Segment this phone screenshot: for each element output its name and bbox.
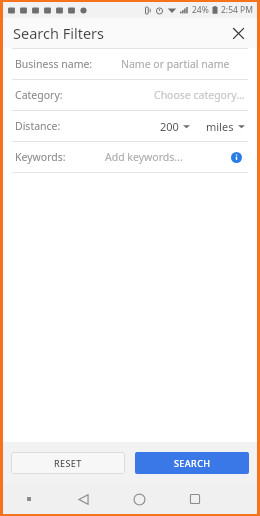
staticText: RESET	[54, 457, 82, 469]
button[interactable]: Keywords info	[227, 148, 245, 166]
button[interactable]: SEARCH	[135, 452, 249, 474]
button[interactable]: 200	[160, 119, 190, 134]
staticText: Category:	[15, 88, 63, 102]
staticText: Name or partial name	[121, 57, 230, 71]
staticText: Keywords:	[15, 150, 66, 164]
button[interactable]: Back	[55, 484, 111, 514]
staticText: 24%	[192, 4, 209, 16]
button[interactable]: Home	[111, 484, 167, 514]
staticText: Add keywords...	[105, 150, 183, 164]
button[interactable]: Add keywords...	[105, 150, 183, 164]
staticText: 2:54 PM	[221, 4, 253, 16]
button[interactable]: Business name:	[3, 49, 257, 79]
button[interactable]: Close	[225, 20, 251, 46]
staticText: 200	[160, 119, 179, 134]
button[interactable]: miles	[206, 119, 245, 134]
staticText: SEARCH	[174, 457, 211, 469]
staticText: Business name:	[15, 57, 93, 71]
button[interactable]: Recent apps	[167, 484, 223, 514]
button[interactable]: RESET	[11, 452, 125, 474]
staticText: Choose category...	[154, 88, 245, 102]
staticText: Search Filters	[13, 23, 105, 43]
button[interactable]: Category:	[3, 80, 257, 110]
staticText: Distance:	[15, 119, 61, 133]
staticText: miles	[206, 119, 234, 134]
